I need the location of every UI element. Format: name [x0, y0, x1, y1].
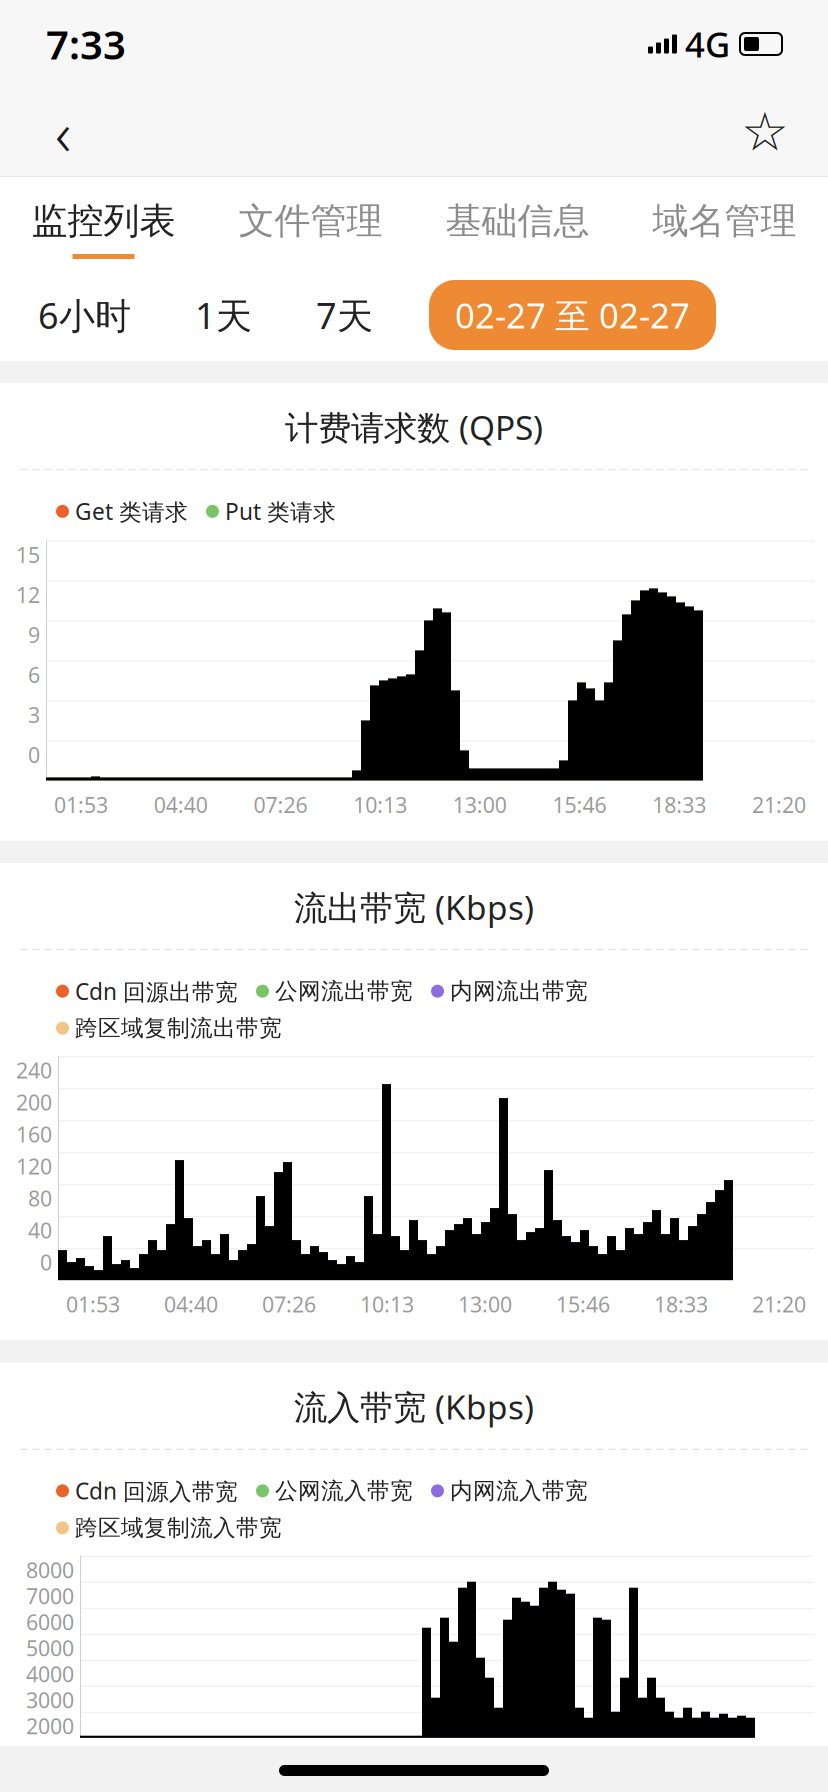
staticText: 1天 [195, 291, 252, 339]
button[interactable]: 02-27 至 02-27 [429, 280, 716, 350]
staticText: 流出带宽 (Kbps) [294, 885, 534, 929]
staticText: 计费请求数 (QPS) [285, 405, 543, 449]
staticText: 2000 [26, 1712, 74, 1740]
staticText: 5000 [26, 1634, 74, 1662]
staticText: 8000 [26, 1556, 74, 1584]
staticText: 04:40 [154, 790, 208, 819]
staticText: 6小时 [38, 291, 131, 339]
staticText: 公网流出带宽 [275, 977, 413, 1005]
staticText: 160 [16, 1120, 52, 1148]
button[interactable]: 6小时 [30, 291, 139, 339]
staticText: Get 类请求 [75, 496, 188, 526]
staticText: 13:00 [458, 1290, 512, 1318]
button[interactable]: 文件管理 [207, 177, 414, 269]
button[interactable]: 基础信息 [414, 177, 621, 269]
staticText: 07:26 [253, 790, 307, 819]
staticText: 18:33 [652, 790, 706, 819]
staticText: 21:20 [752, 790, 806, 819]
staticText: 07:26 [262, 1290, 316, 1318]
staticText: 10:13 [360, 1290, 414, 1318]
staticText: 6000 [26, 1608, 74, 1636]
staticText: 9 [28, 620, 40, 649]
staticText: 13:00 [453, 790, 507, 819]
staticText: 12 [16, 580, 40, 609]
staticText: 跨区域复制流出带宽 [75, 1014, 282, 1042]
staticText: 01:53 [66, 1290, 120, 1318]
staticText: 40 [28, 1216, 52, 1244]
staticText: 公网流入带宽 [275, 1477, 413, 1505]
staticText: 15 [16, 540, 40, 569]
staticText: 04:40 [164, 1290, 218, 1318]
staticText: 文件管理 [238, 199, 382, 243]
staticText: Cdn 回源入带宽 [75, 1476, 238, 1506]
staticText: 4000 [26, 1660, 74, 1688]
button[interactable]: Back [18, 88, 108, 176]
staticText: 6 [28, 660, 40, 689]
button[interactable]: 1天 [187, 291, 260, 339]
staticText: ☆ [741, 102, 789, 162]
staticText: 200 [16, 1088, 52, 1116]
staticText: 10:13 [353, 790, 407, 819]
staticText: 内网流出带宽 [450, 977, 588, 1005]
staticText: 02-27 至 02-27 [455, 292, 690, 338]
staticText: 80 [28, 1184, 52, 1212]
staticText: Put 类请求 [225, 496, 336, 526]
staticText: 流入带宽 (Kbps) [294, 1384, 534, 1429]
staticText: 3000 [26, 1686, 74, 1714]
staticText: 7000 [26, 1582, 74, 1610]
staticText: 7天 [316, 291, 373, 339]
staticText: 01:53 [54, 790, 108, 819]
staticText: Cdn 回源出带宽 [75, 976, 238, 1006]
staticText: 监控列表 [31, 199, 175, 243]
button[interactable]: 7天 [308, 291, 381, 339]
staticText: 内网流入带宽 [450, 1477, 588, 1505]
staticText: 0 [28, 740, 40, 769]
staticText: 跨区域复制流入带宽 [75, 1514, 282, 1542]
staticText: ‹ [55, 91, 71, 173]
staticText: 240 [16, 1056, 52, 1084]
staticText: 4G [685, 21, 730, 67]
staticText: 21:20 [752, 1290, 806, 1318]
staticText: 7:33 [46, 17, 126, 70]
staticText: 15:46 [556, 1290, 610, 1318]
staticText: 基础信息 [445, 199, 589, 243]
staticText: 3 [28, 700, 40, 729]
staticText: 18:33 [654, 1290, 708, 1318]
button[interactable]: Favorite [720, 88, 810, 176]
staticText: 15:46 [553, 790, 607, 819]
staticText: 0 [40, 1248, 52, 1276]
staticText: 120 [16, 1152, 52, 1180]
button[interactable]: 域名管理 [621, 177, 828, 269]
staticText: 域名管理 [652, 199, 796, 243]
button[interactable]: 监控列表 [0, 177, 207, 269]
